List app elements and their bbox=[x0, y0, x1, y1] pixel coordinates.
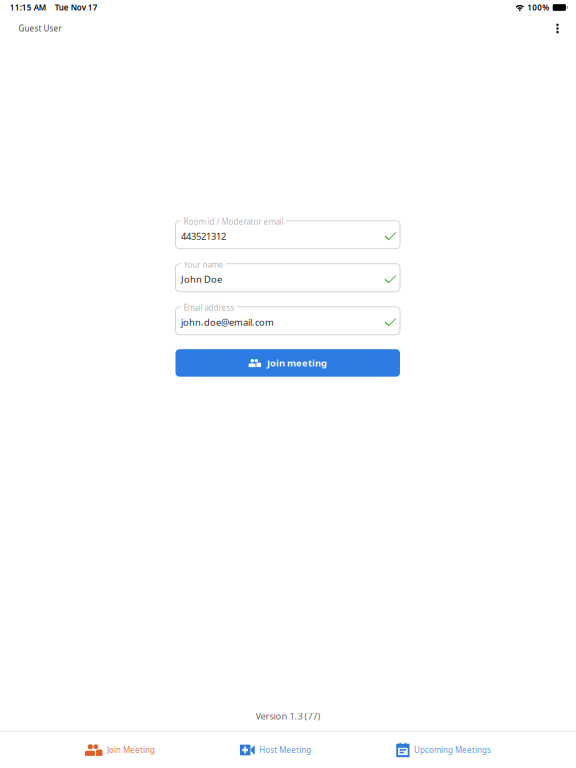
staticText: 100% bbox=[527, 2, 549, 13]
staticText: Guest User bbox=[18, 23, 61, 34]
staticText: Upcoming Meetings bbox=[414, 745, 491, 755]
staticText: 11:15 AM bbox=[10, 2, 46, 13]
staticText: Version 1.3 (77) bbox=[255, 710, 320, 722]
button[interactable]: More options bbox=[542, 14, 572, 42]
staticText: Join meeting bbox=[267, 357, 327, 369]
staticText: Host Meeting bbox=[259, 745, 311, 755]
staticText: john.doe@email.com bbox=[181, 316, 274, 328]
button[interactable]: Join meeting bbox=[175, 349, 400, 377]
button[interactable]: Host Meeting bbox=[240, 731, 311, 768]
staticText: John Doe bbox=[181, 273, 222, 285]
staticText: Your name bbox=[183, 259, 223, 270]
staticText: Join Meeting bbox=[107, 745, 155, 755]
button[interactable]: Join Meeting bbox=[85, 731, 155, 768]
staticText: Email address bbox=[183, 302, 234, 313]
button[interactable]: Upcoming Meetings bbox=[396, 731, 491, 768]
staticText: Tue Nov 17 bbox=[55, 2, 98, 13]
staticText: 443521312 bbox=[181, 230, 226, 242]
staticText: Room id / Moderator email bbox=[183, 216, 283, 227]
